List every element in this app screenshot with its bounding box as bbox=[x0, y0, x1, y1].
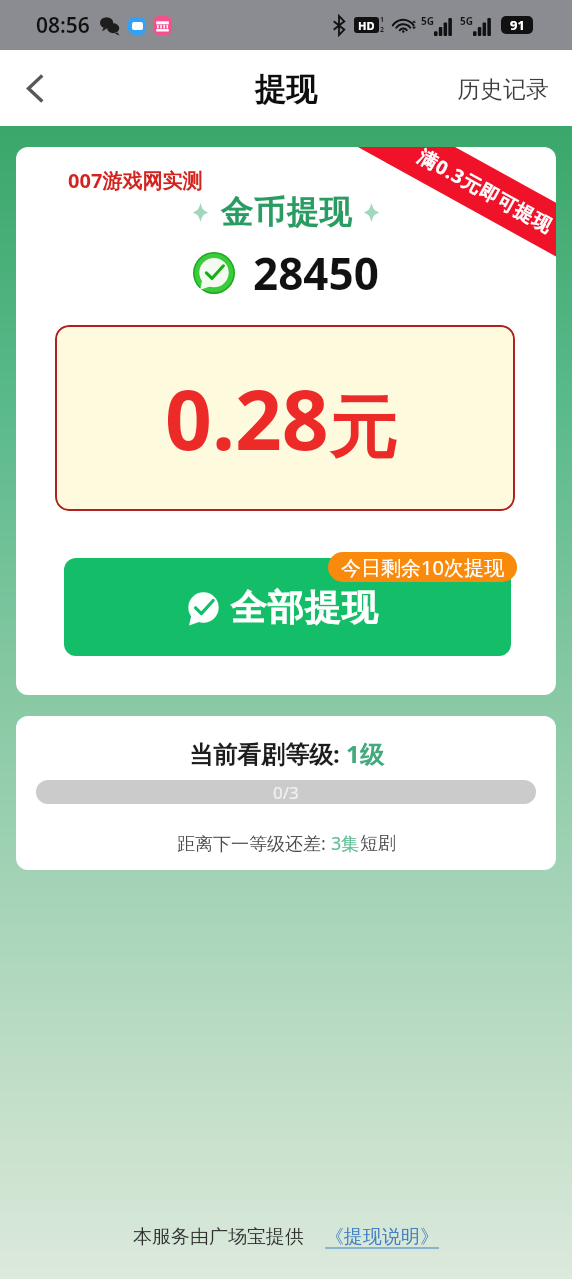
staticText: 0/3 bbox=[273, 781, 299, 804]
staticText: 历史记录 bbox=[457, 75, 549, 104]
staticText: 007游戏网实测 bbox=[68, 167, 203, 194]
button[interactable]: Back bbox=[3, 57, 65, 119]
staticText: 今日剩余10次提现 bbox=[341, 554, 504, 581]
staticText: 2 bbox=[380, 25, 385, 35]
staticText: 金币提现 bbox=[220, 192, 352, 232]
staticText: 5G bbox=[460, 14, 473, 28]
staticText: 1级 bbox=[346, 737, 384, 770]
button[interactable]: 全部提现 bbox=[64, 558, 511, 656]
staticText: 距离下一等级还差: bbox=[177, 831, 331, 856]
staticText: 本服务由广场宝提供 bbox=[133, 1225, 304, 1249]
staticText: 3集 bbox=[331, 831, 360, 856]
staticText: 08:56 bbox=[36, 11, 90, 40]
staticText: 1 bbox=[380, 15, 385, 25]
staticText: 当前看剧等级: bbox=[189, 737, 346, 770]
staticText: 全部提现 bbox=[230, 585, 378, 630]
button[interactable]: 《提现说明》 bbox=[325, 1225, 439, 1249]
button[interactable]: 历史记录 bbox=[434, 61, 572, 118]
staticText: 5G bbox=[421, 14, 434, 28]
staticText: 0.28 bbox=[165, 362, 329, 474]
staticText: 《提现说明》 bbox=[325, 1225, 439, 1249]
staticText: 91 bbox=[510, 16, 525, 34]
staticText: 短剧 bbox=[360, 832, 396, 855]
staticText: 提现 bbox=[255, 70, 317, 109]
staticText: 满0.3元即可提现 bbox=[413, 147, 556, 239]
staticText: 元 bbox=[329, 386, 397, 472]
staticText: 28450 bbox=[253, 243, 379, 303]
staticText: HD bbox=[358, 18, 375, 33]
